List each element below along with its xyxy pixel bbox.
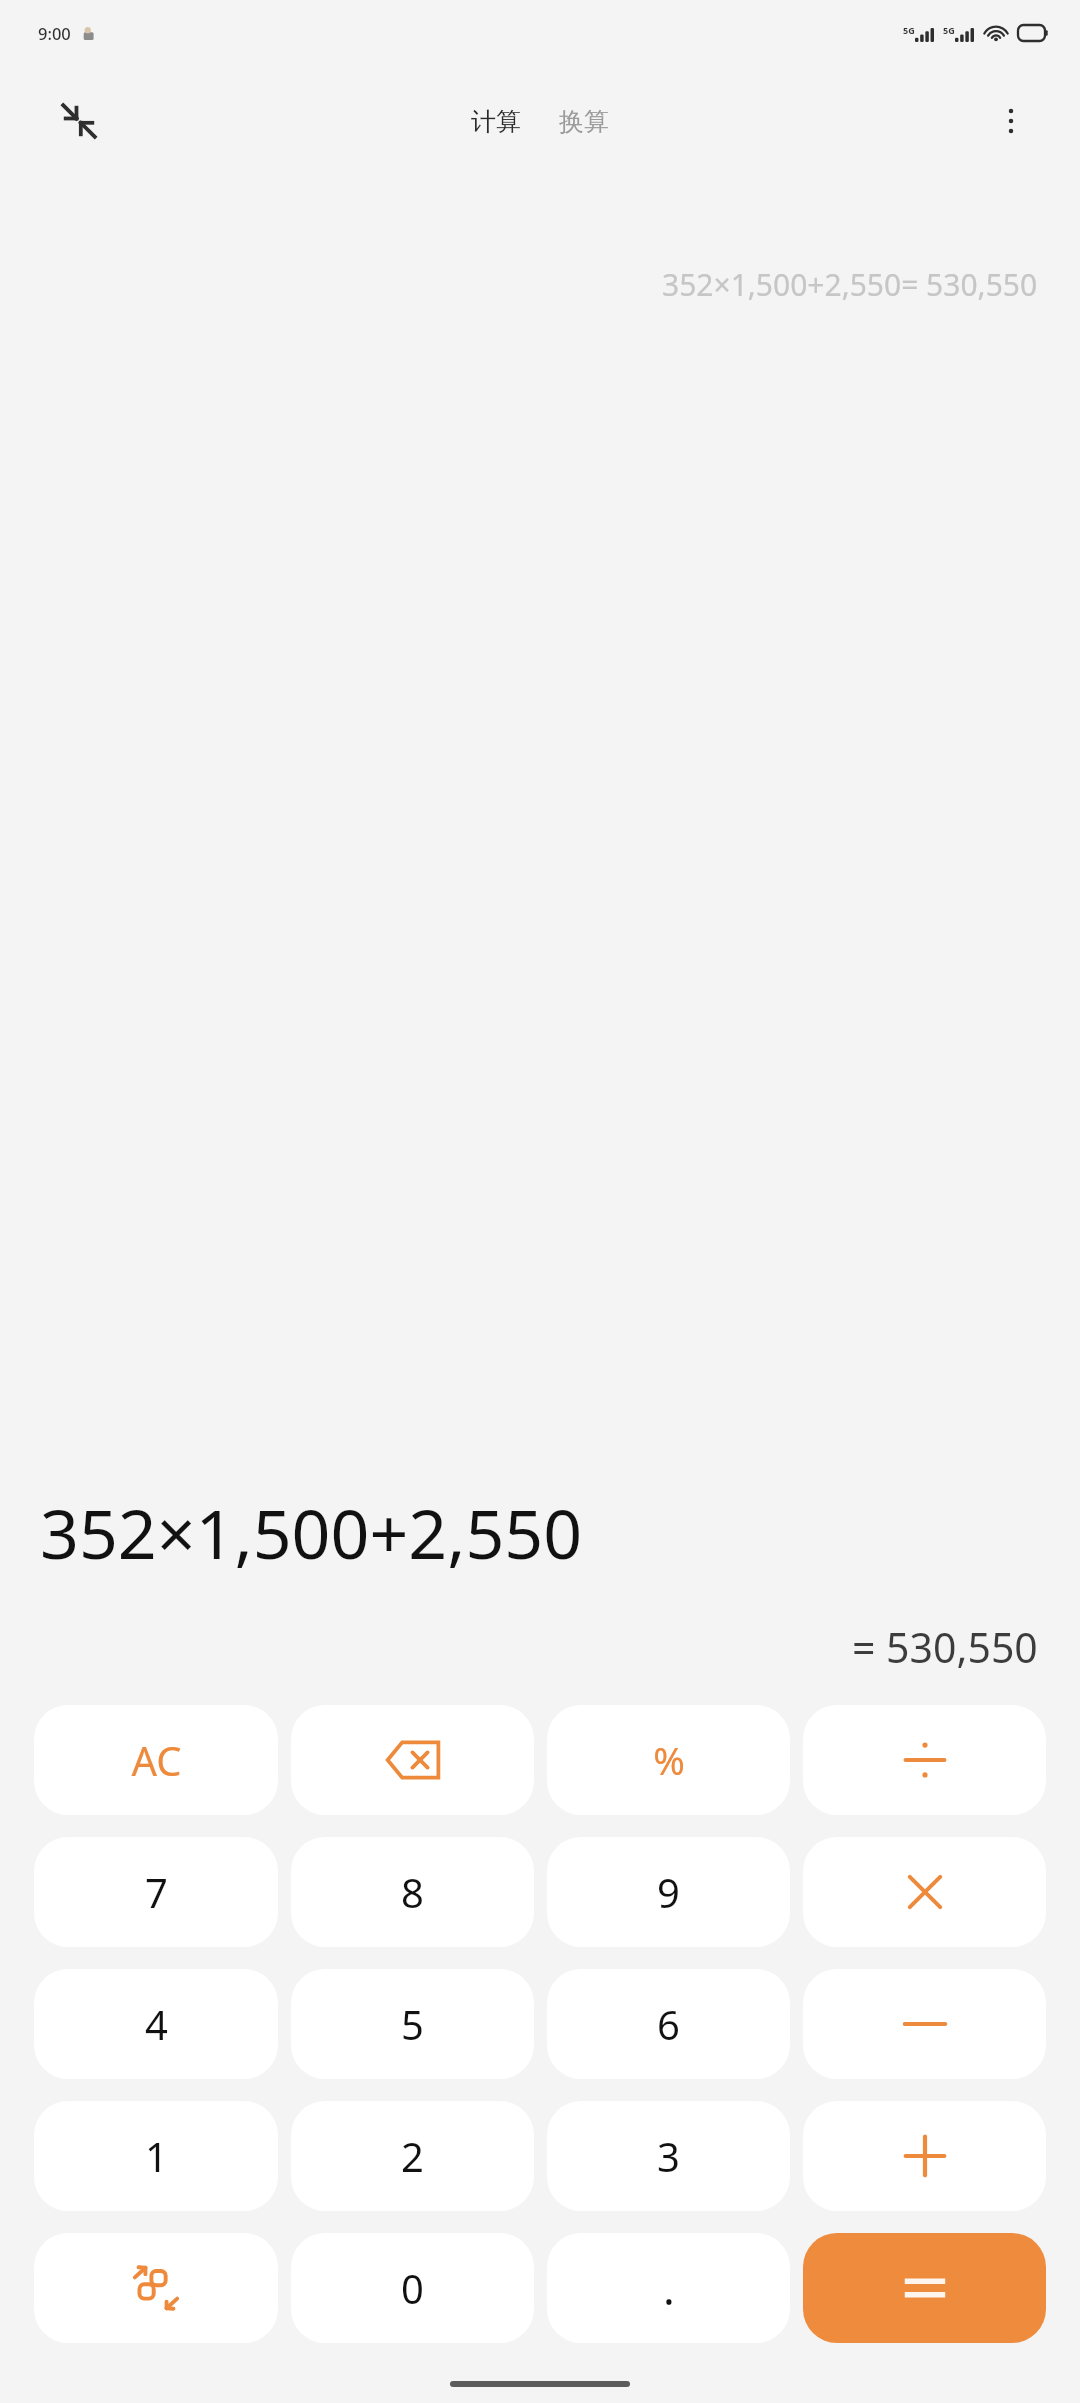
button[interactable]: Equals	[803, 2233, 1046, 2343]
staticText: 换算	[559, 106, 609, 137]
staticText: 5G	[903, 24, 915, 36]
staticText: = 530,550	[852, 1619, 1038, 1675]
button[interactable]: Unit conversion	[34, 2233, 278, 2343]
staticText: 7	[145, 1865, 168, 1919]
button[interactable]: More options	[982, 92, 1040, 150]
button[interactable]: 换算	[553, 98, 615, 145]
staticText: 5	[401, 1997, 424, 2051]
staticText: AC	[131, 1733, 182, 1787]
button[interactable]: 6	[547, 1969, 790, 2079]
button[interactable]: Multiply	[803, 1837, 1046, 1947]
button[interactable]: 8	[291, 1837, 534, 1947]
button[interactable]: %	[547, 1705, 790, 1815]
staticText: 8	[401, 1865, 424, 1919]
button[interactable]: Minus	[803, 1969, 1046, 2079]
staticText: 2	[401, 2129, 424, 2183]
button[interactable]: Backspace	[291, 1705, 534, 1815]
button[interactable]: 1	[34, 2101, 278, 2211]
button[interactable]: 0	[291, 2233, 534, 2343]
staticText: .	[663, 2258, 675, 2318]
button[interactable]: 2	[291, 2101, 534, 2211]
staticText: 3	[657, 2129, 680, 2183]
staticText: %	[653, 1734, 685, 1786]
staticText: 352×1,500+2,550	[40, 1486, 583, 1579]
button[interactable]: 9	[547, 1837, 790, 1947]
button[interactable]: 7	[34, 1837, 278, 1947]
staticText: 计算	[471, 106, 521, 137]
staticText: 9:00	[38, 22, 71, 44]
staticText: 1	[145, 2129, 168, 2183]
staticText: 4	[145, 1997, 168, 2051]
button[interactable]: 计算	[465, 98, 527, 145]
button[interactable]: .	[547, 2233, 790, 2343]
staticText: 0	[401, 2261, 424, 2315]
staticText: 9	[657, 1865, 680, 1919]
staticText: 5G	[943, 24, 955, 36]
staticText: 352×1,500+2,550= 530,550	[662, 264, 1038, 305]
button[interactable]: 5	[291, 1969, 534, 2079]
staticText: 6	[657, 1997, 680, 2051]
button[interactable]: Plus	[803, 2101, 1046, 2211]
button[interactable]: Collapse	[48, 90, 110, 152]
button[interactable]: Divide	[803, 1705, 1046, 1815]
button[interactable]: 4	[34, 1969, 278, 2079]
button[interactable]: 3	[547, 2101, 790, 2211]
button[interactable]: AC	[34, 1705, 278, 1815]
